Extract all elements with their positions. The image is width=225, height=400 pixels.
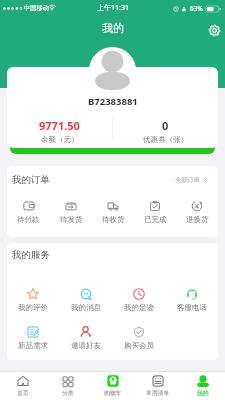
button[interactable]: 我的消息 (59, 288, 112, 312)
button[interactable]: 头像 (94, 51, 131, 91)
staticText: 9771.50 (39, 118, 80, 133)
staticText: 中国移动 (24, 4, 49, 12)
button[interactable]: 分类 (45, 375, 90, 400)
button[interactable]: 待付款 (7, 200, 50, 224)
button[interactable]: 0 (113, 118, 218, 144)
button[interactable]: 邀请好友 (59, 326, 112, 350)
staticText: 63% (190, 4, 203, 13)
button[interactable]: 常用清单 (135, 375, 180, 400)
staticText: 上午11:31 (97, 3, 129, 13)
button[interactable]: 购物车 (90, 375, 135, 400)
button[interactable]: 我的 (180, 375, 225, 400)
staticText: 0 (162, 118, 169, 133)
staticText: 购物车 (104, 389, 122, 396)
staticText: 已完成 (144, 215, 167, 224)
button[interactable]: 待收货 (92, 200, 134, 224)
staticText: 待收货 (102, 215, 125, 224)
staticText: 优惠券（张） (143, 135, 188, 144)
staticText: 分类 (62, 389, 74, 396)
staticText: 待发货 (60, 215, 83, 224)
button[interactable]: 9771.50 (7, 118, 112, 144)
staticText: 常用清单 (146, 389, 170, 396)
staticText: 我的消息 (71, 303, 101, 312)
button[interactable]: 新品需求 (7, 326, 59, 350)
staticText: B72383881 (88, 95, 138, 108)
staticText: 客服电话 (177, 303, 207, 312)
staticText: 新品需求 (18, 341, 48, 350)
button[interactable]: 设置 (205, 21, 223, 39)
staticText: 我的订单 (12, 174, 50, 186)
button[interactable]: 全部订单 (175, 176, 218, 184)
button[interactable]: 退换货 (176, 200, 218, 224)
button[interactable]: 购买会员 (112, 326, 165, 350)
staticText: 我的服务 (12, 249, 50, 261)
staticText: 我的评价 (18, 303, 48, 312)
staticText: 购买会员 (124, 341, 154, 350)
staticText: 全部订单 (175, 176, 200, 184)
staticText: 余额（元） (41, 135, 79, 144)
button[interactable]: 我的评价 (7, 288, 59, 312)
button[interactable]: 待发货 (50, 200, 92, 224)
button[interactable]: 客服电话 (165, 288, 218, 312)
staticText: 我的 (197, 389, 209, 396)
staticText: 首页 (17, 389, 29, 396)
staticText: 我的足迹 (124, 303, 154, 312)
button[interactable]: 我的足迹 (112, 288, 165, 312)
staticText: 邀请好友 (71, 341, 101, 350)
staticText: 待付款 (17, 215, 40, 224)
button[interactable]: 已完成 (134, 200, 176, 224)
button[interactable]: 首页 (0, 375, 45, 400)
staticText: 我的 (102, 21, 124, 35)
staticText: 退换货 (186, 215, 209, 224)
